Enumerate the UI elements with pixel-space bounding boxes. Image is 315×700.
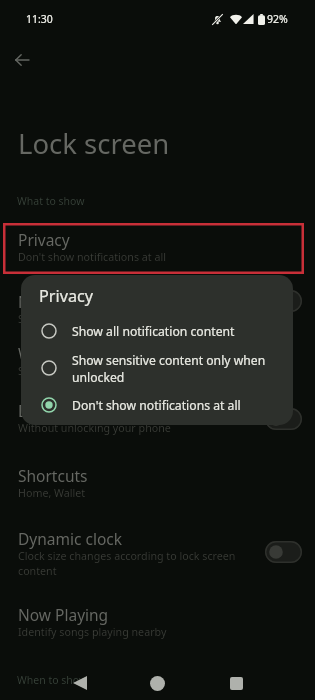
- staticText: Dynamic clock: [18, 528, 122, 549]
- button[interactable]: Now Playing: [0, 596, 315, 642]
- button[interactable]: Wallet: [0, 335, 315, 381]
- button[interactable]: Toggle Dynamic clock: [265, 541, 302, 563]
- button[interactable]: Don't show notifications at all: [21, 388, 293, 422]
- staticText: Lock screen: [18, 125, 170, 162]
- button[interactable]: Privacy: [0, 221, 315, 267]
- staticText: Now Playing: [18, 604, 109, 625]
- button[interactable]: Show all notification content: [21, 314, 293, 348]
- staticText: Home, Wallet: [18, 486, 86, 501]
- button[interactable]: Toggle Notifications: [265, 290, 302, 312]
- button[interactable]: Dynamic clock: [0, 520, 315, 582]
- staticText: content: [18, 564, 57, 579]
- button[interactable]: Shortcuts: [0, 457, 315, 503]
- staticText: Don't show notifications at all: [18, 250, 166, 265]
- button[interactable]: Back: [53, 664, 106, 700]
- button[interactable]: Notifications: [0, 283, 315, 329]
- button[interactable]: Recent apps: [210, 664, 263, 700]
- button[interactable]: Toggle Device controls: [265, 408, 302, 430]
- staticText: When to show: [17, 673, 88, 687]
- staticText: Show wallet: [18, 364, 78, 379]
- staticText: Privacy: [18, 229, 70, 250]
- button[interactable]: Navigate up: [4, 42, 40, 78]
- staticText: Show all notification content: [72, 323, 235, 340]
- staticText: What to show: [17, 194, 85, 208]
- staticText: Show conversations, default, and silent: [18, 312, 214, 327]
- staticText: 92%: [267, 12, 288, 26]
- staticText: Clock size changes according to lock scr…: [18, 549, 236, 564]
- staticText: Wallet: [18, 343, 64, 364]
- staticText: Identify songs playing nearby: [18, 625, 167, 640]
- staticText: Shortcuts: [18, 465, 88, 486]
- staticText: Don't show notifications at all: [72, 397, 241, 414]
- staticText: 11:30: [26, 12, 53, 26]
- staticText: Device controls: [18, 400, 129, 421]
- staticText: Notifications: [18, 291, 111, 312]
- staticText: Without unlocking your phone: [18, 421, 171, 436]
- staticText: Privacy: [39, 285, 93, 307]
- staticText: Show sensitive content only when unlocke…: [72, 352, 266, 385]
- button[interactable]: Device controls: [0, 392, 315, 438]
- button[interactable]: Home: [131, 664, 184, 700]
- button[interactable]: Show sensitive content only when unlocke…: [21, 351, 293, 385]
